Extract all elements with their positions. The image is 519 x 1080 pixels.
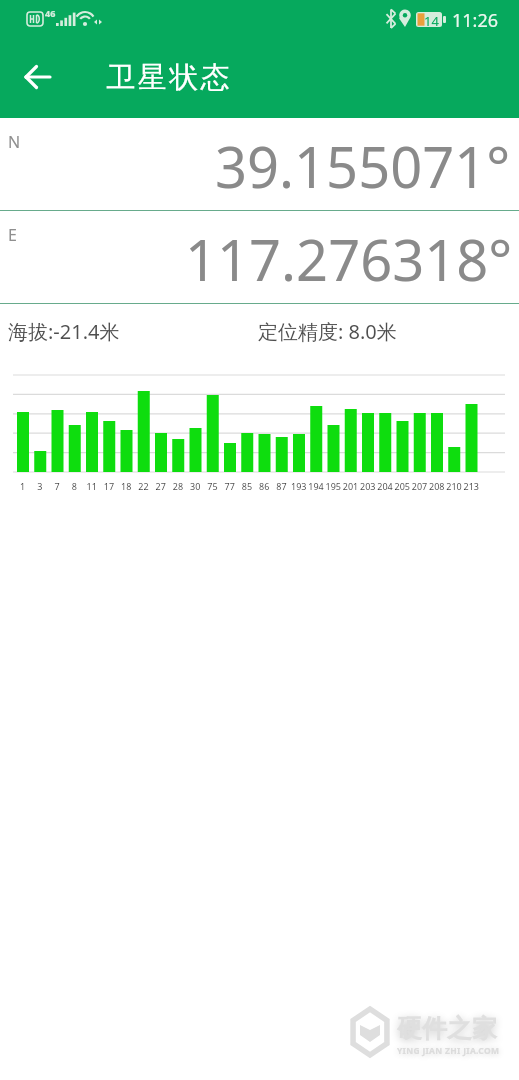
staticText: 46: [45, 7, 56, 19]
staticText: 14: [424, 12, 439, 30]
staticText: 117.276318°: [185, 221, 513, 297]
staticText: 卫星状态: [105, 59, 231, 96]
staticText: 海拔:-21.4米: [8, 318, 120, 345]
staticText: E: [8, 224, 17, 246]
button[interactable]: [14, 53, 62, 101]
staticText: 39.155071°: [215, 128, 511, 204]
staticText: 11:26: [452, 8, 499, 33]
staticText: N: [8, 131, 21, 153]
staticText: YING JIAN ZHI JIA.COM: [397, 1045, 500, 1057]
staticText: 定位精度: 8.0米: [258, 318, 397, 345]
staticText: 硬件之家: [397, 1013, 497, 1044]
